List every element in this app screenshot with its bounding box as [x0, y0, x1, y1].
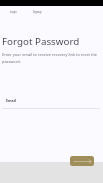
staticText: Login	[10, 10, 17, 14]
staticText: Enter your email to receive recovery lin…	[2, 52, 100, 65]
button[interactable]: Submit	[70, 156, 94, 166]
staticText: Signup	[33, 10, 42, 14]
button[interactable]: Signup	[26, 6, 49, 18]
staticText: Forgot Password	[2, 35, 80, 48]
button[interactable]: Login	[0, 6, 26, 18]
staticText: Email	[6, 98, 16, 103]
